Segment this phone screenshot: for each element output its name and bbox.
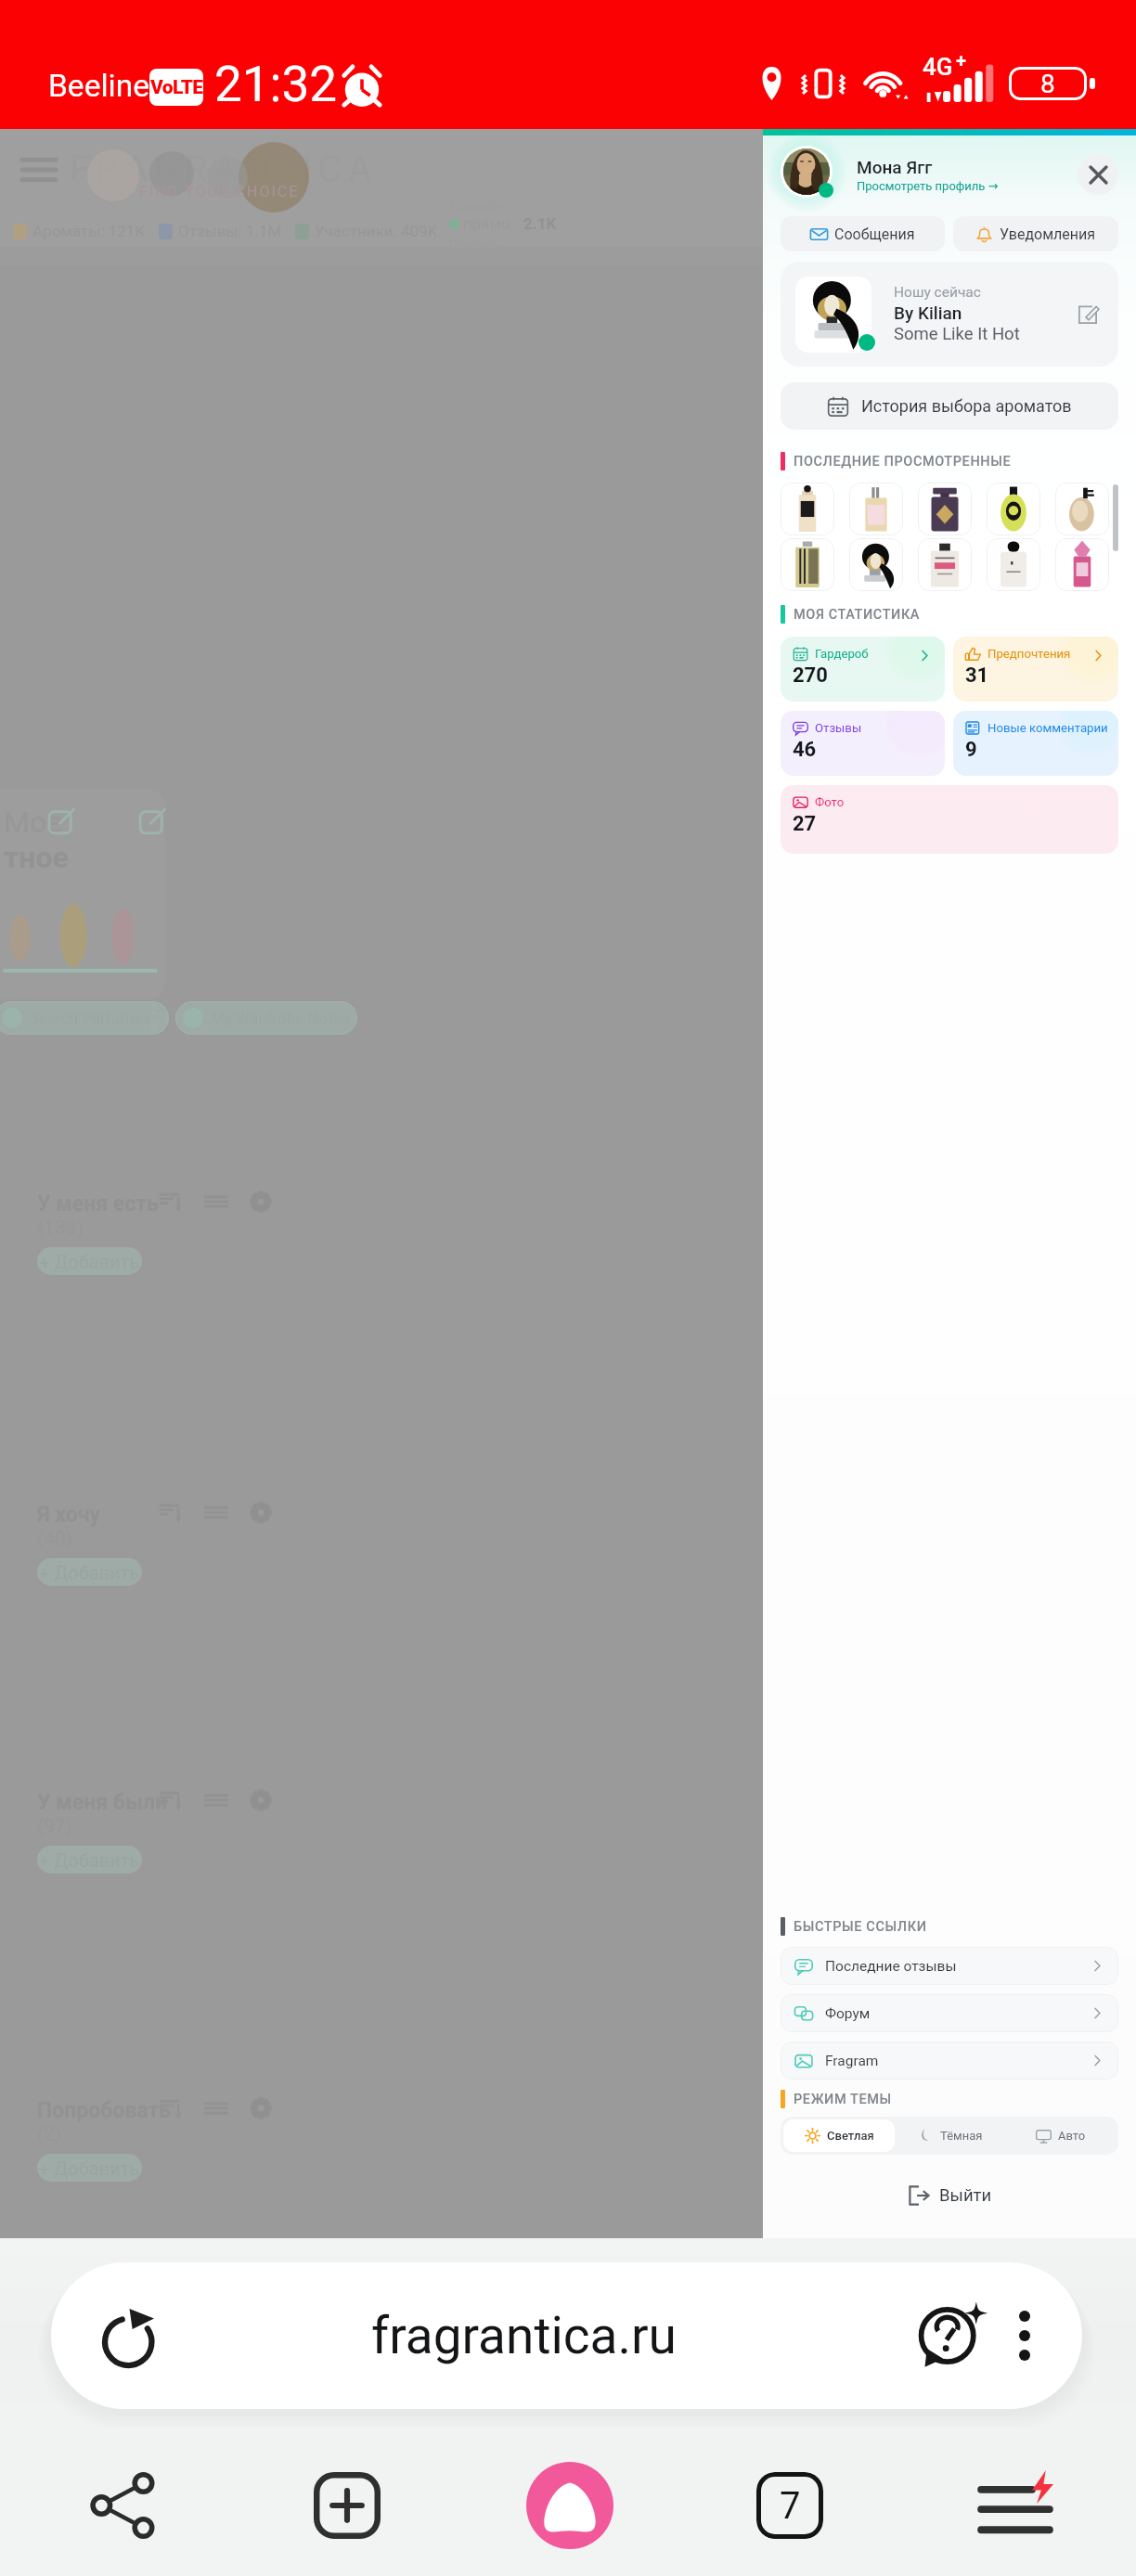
button[interactable]: Форум — [781, 1994, 1118, 2032]
staticText: У меня были — [37, 1790, 168, 1815]
staticText: 31 — [965, 663, 989, 688]
staticText: Выйти — [939, 2185, 992, 2206]
staticText: БЫСТРЫЕ ССЫЛКИ — [794, 1919, 927, 1935]
staticText: Попробовать — [37, 2098, 172, 2123]
staticText: Предпочтения — [988, 647, 1071, 661]
button[interactable]: Tabs: 7 — [739, 2454, 841, 2557]
button[interactable]: Reload — [51, 2262, 1082, 2409]
staticText: 8 — [1040, 69, 1055, 99]
button[interactable]: Perfume 9 — [987, 538, 1040, 591]
staticText: 4G — [923, 53, 953, 81]
staticText: By Kilian — [894, 303, 962, 323]
button[interactable]: Close panel — [1078, 154, 1118, 195]
button[interactable]: Уведомления — [953, 216, 1118, 251]
button[interactable]: Perfume 6 — [781, 538, 834, 591]
button[interactable]: Предпочтения — [953, 637, 1118, 702]
button[interactable]: Отзывы — [781, 711, 945, 776]
button[interactable]: Авто — [1005, 2119, 1116, 2152]
button[interactable]: Последние отзывы — [781, 1947, 1118, 1985]
staticText: ПОСЛЕДНИЕ ПРОСМОТРЕННЫЕ — [794, 454, 1012, 470]
staticText: Гардероб — [815, 647, 869, 661]
button[interactable]: История выбора ароматов — [781, 382, 1118, 430]
staticText: Светлая — [827, 2129, 874, 2143]
staticText: тное — [4, 840, 69, 875]
staticText: 2.1K — [523, 214, 557, 233]
staticText: Тёмная — [940, 2129, 983, 2143]
button[interactable]: Perfume 5 — [1055, 483, 1109, 535]
staticText: 7 — [780, 2484, 801, 2528]
staticText: Я хочу — [37, 1502, 101, 1527]
staticText: 21:32 — [214, 56, 337, 113]
button[interactable]: Perfume 2 — [849, 483, 903, 535]
staticText: Уведомления — [1000, 225, 1096, 243]
staticText: Просмотреть профиль → — [857, 179, 999, 193]
button[interactable]: Гардероб — [781, 637, 945, 702]
staticText: РЕЖИМ ТЕМЫ — [794, 2092, 892, 2107]
staticText: История выбора ароматов — [861, 396, 1072, 416]
button[interactable]: Alice — [519, 2454, 621, 2557]
staticText: Форум — [825, 2005, 871, 2022]
staticText: FIND YOUR CHOICE — [139, 183, 300, 200]
staticText: Some Like It Hot — [894, 324, 1020, 344]
staticText: Beeline — [48, 68, 149, 104]
button[interactable]: Fragram — [781, 2041, 1118, 2080]
button[interactable]: Perfume 1 — [781, 483, 834, 535]
button[interactable]: Фото — [781, 785, 1118, 854]
staticText: + — [956, 49, 966, 71]
button[interactable]: Perfume 3 — [918, 483, 972, 535]
button[interactable]: Выйти — [781, 2177, 1118, 2214]
staticText: Сообщения — [834, 225, 915, 243]
staticText: 27 — [793, 812, 817, 836]
button[interactable]: Perfume 7 — [849, 538, 903, 591]
staticText: Fragram — [825, 2053, 879, 2069]
staticText: Фото — [815, 795, 845, 809]
staticText: Мона Ягг — [857, 157, 933, 177]
button[interactable]: Reload — [96, 2302, 162, 2369]
staticText: МОЯ СТАТИСТИКА — [794, 607, 921, 623]
staticText: VoLTE — [150, 76, 203, 99]
staticText: 9 — [965, 738, 977, 762]
staticText: У меня есть — [37, 1191, 159, 1217]
button[interactable]: Светлая — [783, 2119, 895, 2152]
button[interactable]: Ношу сейчас — [781, 262, 1118, 367]
staticText: Последние отзывы — [825, 1958, 957, 1975]
staticText: fragrantica.ru — [125, 2306, 923, 2365]
staticText: Новые комментарии — [988, 721, 1108, 735]
staticText: Авто — [1058, 2129, 1086, 2143]
button[interactable]: More options — [995, 2306, 1054, 2365]
staticText: Ношу сейчас — [894, 284, 981, 301]
staticText: 270 — [793, 663, 828, 688]
staticText: 46 — [793, 738, 817, 762]
button[interactable]: Сообщения — [781, 216, 945, 251]
button[interactable]: Perfume 10 — [1055, 538, 1109, 591]
staticText: Отзывы — [815, 721, 862, 735]
button[interactable]: Новые комментарии — [953, 711, 1118, 776]
button[interactable]: New tab — [296, 2454, 398, 2557]
staticText: Мое — [4, 805, 63, 840]
staticText: 285 — [150, 1001, 161, 1035]
button[interactable]: Тёмная — [895, 2119, 1005, 2152]
button[interactable]: Perfume 4 — [987, 483, 1040, 535]
button[interactable]: Share — [72, 2454, 174, 2557]
button[interactable]: Perfume 8 — [918, 538, 972, 591]
button[interactable]: Menu — [964, 2454, 1066, 2557]
button[interactable]: Edit — [1072, 299, 1104, 330]
button[interactable]: Neuro search — [915, 2299, 989, 2373]
staticText: FRAGRANTICA — [70, 148, 378, 191]
